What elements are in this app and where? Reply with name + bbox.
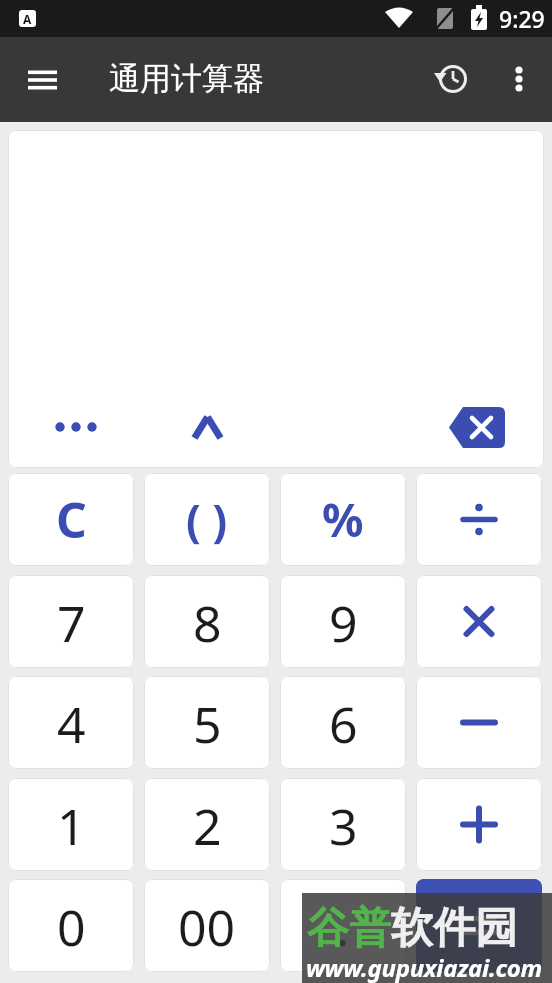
button[interactable]: 2 (144, 778, 270, 871)
staticText: 9:29 (499, 3, 545, 34)
button[interactable] (416, 879, 542, 972)
button[interactable]: . (280, 879, 406, 972)
staticText: 谷普软件园 (307, 902, 517, 955)
button[interactable] (425, 51, 481, 107)
button[interactable]: C (8, 473, 134, 566)
button[interactable]: 7 (8, 575, 134, 668)
button[interactable] (0, 37, 85, 122)
staticText: 0 (57, 893, 86, 961)
staticText: 通用计算器 (109, 59, 264, 98)
staticText: 00 (178, 893, 236, 961)
button[interactable]: 4 (8, 676, 134, 769)
staticText: www.gupuxiazai.com (306, 951, 542, 983)
staticText: 2 (193, 792, 222, 860)
staticText: 8 (193, 589, 222, 657)
staticText: 9 (329, 589, 358, 657)
staticText: 3 (329, 792, 358, 860)
staticText: ( ) (186, 490, 228, 550)
button[interactable] (8, 130, 544, 468)
button[interactable] (416, 778, 542, 871)
button[interactable]: 00 (144, 879, 270, 972)
button[interactable]: 8 (144, 575, 270, 668)
button[interactable]: 5 (144, 676, 270, 769)
button[interactable] (496, 51, 542, 107)
button[interactable] (416, 473, 542, 566)
staticText: A (23, 11, 32, 27)
staticText: % (322, 488, 364, 551)
button[interactable]: % (280, 473, 406, 566)
button[interactable]: 6 (280, 676, 406, 769)
button[interactable] (416, 676, 542, 769)
staticText: 1 (57, 792, 86, 860)
button[interactable]: ( ) (144, 473, 270, 566)
staticText: C (56, 487, 87, 552)
button[interactable] (416, 575, 542, 668)
staticText: 4 (57, 690, 86, 758)
button[interactable]: 3 (280, 778, 406, 871)
staticText: 7 (57, 589, 86, 657)
button[interactable]: 0 (8, 879, 134, 972)
staticText: . (336, 893, 350, 961)
button[interactable]: 9 (280, 575, 406, 668)
button[interactable]: 1 (8, 778, 134, 871)
staticText: 6 (329, 690, 358, 758)
staticText: 5 (193, 690, 222, 758)
